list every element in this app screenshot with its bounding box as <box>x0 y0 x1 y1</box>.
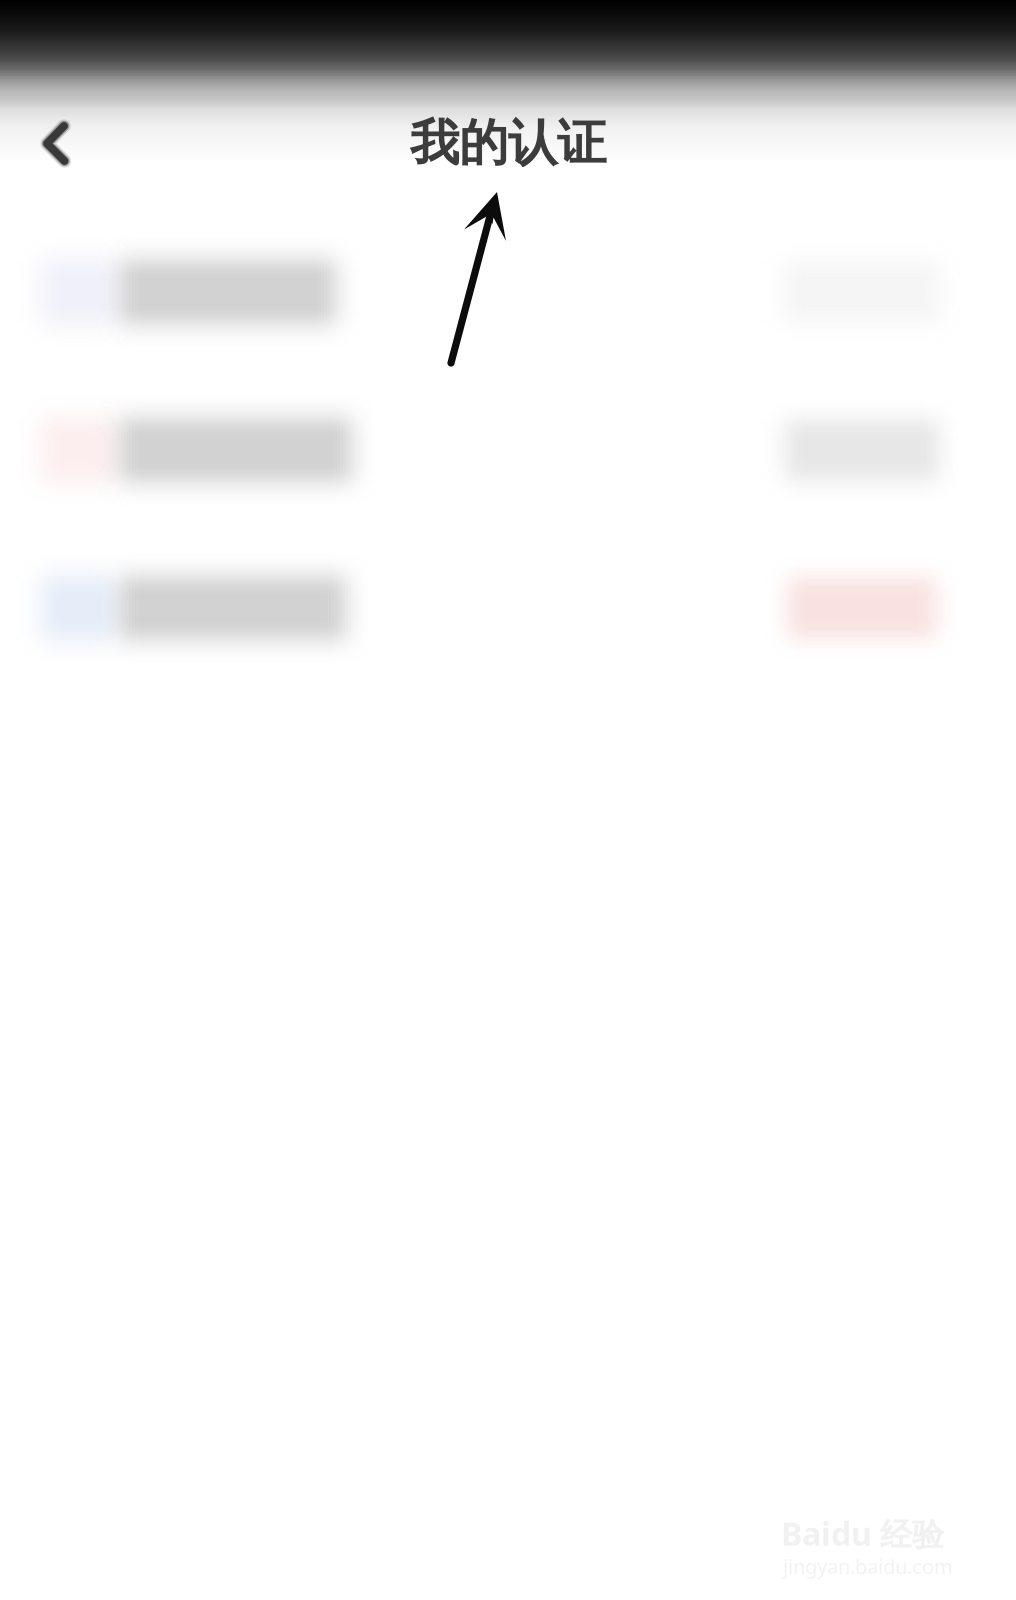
button[interactable] <box>0 529 1016 687</box>
button[interactable] <box>0 213 1016 371</box>
button[interactable]: Back <box>14 100 114 200</box>
button[interactable] <box>0 371 1016 529</box>
staticText: Baidu 经验 <box>781 1512 944 1555</box>
staticText: 我的认证 <box>410 113 606 173</box>
staticText: jingyan.baidu.com <box>783 1553 953 1580</box>
